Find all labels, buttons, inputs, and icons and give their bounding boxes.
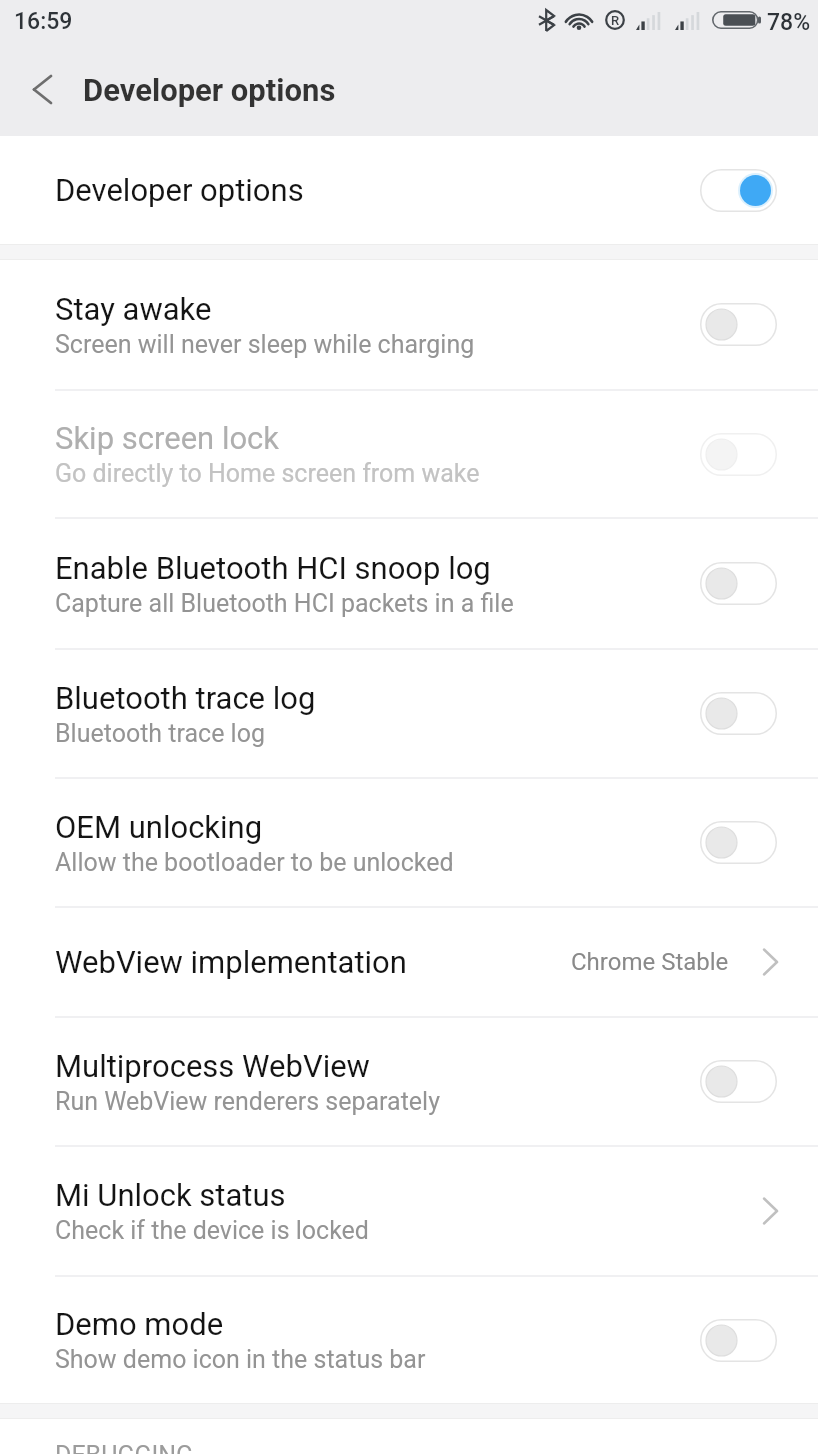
button[interactable]: Enable Bluetooth HCI snoop log [0, 519, 818, 648]
staticText: WebView implementation [55, 944, 407, 980]
button[interactable]: Multiprocess WebView [0, 1018, 818, 1145]
staticText: Enable Bluetooth HCI snoop log [55, 550, 491, 586]
button[interactable]: Bluetooth trace log [0, 650, 818, 777]
staticText: 16:59 [14, 8, 73, 35]
button[interactable]: Stay awake [0, 260, 818, 389]
staticText: Chrome Stable [571, 948, 729, 976]
button[interactable]: Skip screen lock [0, 391, 818, 517]
button[interactable]: Toggle [700, 303, 777, 346]
button[interactable]: Demo mode [0, 1277, 818, 1403]
button[interactable]: Toggle [700, 821, 777, 864]
staticText: Stay awake [55, 291, 212, 327]
button[interactable]: Developer options [0, 136, 818, 244]
staticText: Developer options [83, 72, 336, 108]
staticText: 78% [767, 9, 811, 36]
button[interactable]: OEM unlocking [0, 779, 818, 906]
staticText: Multiprocess WebView [55, 1048, 370, 1084]
button[interactable]: Toggle [700, 1060, 777, 1103]
button[interactable]: Toggle [700, 433, 777, 476]
staticText: Mi Unlock status [55, 1177, 286, 1213]
staticText: Screen will never sleep while charging [55, 330, 475, 359]
staticText: Skip screen lock [55, 420, 280, 456]
staticText: DEBUGGING [55, 1441, 194, 1454]
staticText: Bluetooth trace log [55, 680, 316, 716]
button[interactable]: Toggle [700, 1319, 777, 1362]
button[interactable]: Mi Unlock status [0, 1147, 818, 1275]
staticText: Go directly to Home screen from wake [55, 459, 480, 488]
staticText: Capture all Bluetooth HCI packets in a f… [55, 589, 514, 618]
button[interactable]: Toggle [700, 692, 777, 735]
staticText: Check if the device is locked [55, 1216, 369, 1245]
button[interactable]: Toggle [700, 562, 777, 605]
staticText: R [611, 13, 620, 28]
staticText: Show demo icon in the status bar [55, 1345, 426, 1374]
staticText: Developer options [55, 172, 304, 208]
staticText: Allow the bootloader to be unlocked [55, 848, 454, 877]
button[interactable]: WebView implementation [0, 908, 818, 1016]
staticText: Run WebView renderers separately [55, 1087, 440, 1116]
staticText: Bluetooth trace log [55, 719, 265, 748]
button[interactable]: Back [14, 61, 70, 117]
staticText: Demo mode [55, 1306, 224, 1342]
button[interactable]: Toggle [700, 169, 777, 212]
staticText: OEM unlocking [55, 809, 263, 845]
